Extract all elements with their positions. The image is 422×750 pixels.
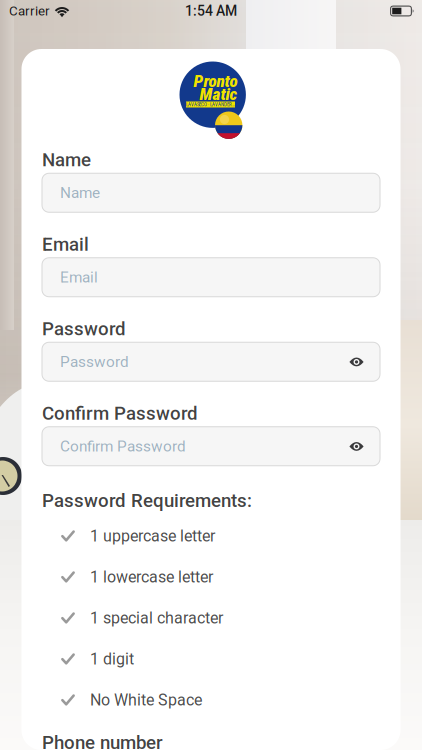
staticText: Confirm Password <box>42 402 198 424</box>
staticText: 1 lowercase letter <box>90 568 213 586</box>
staticText: Confirm Password <box>60 437 186 455</box>
staticText: Name <box>60 184 100 202</box>
staticText: Phone number <box>42 732 163 750</box>
staticText: Pronto <box>193 71 237 91</box>
staticText: Email <box>60 268 98 286</box>
staticText: Carrier <box>9 3 50 19</box>
staticText: Password <box>60 353 129 371</box>
staticText: LAVASECO · LAVANDERIA <box>186 102 235 107</box>
staticText: Name <box>42 149 91 171</box>
staticText: 1 special character <box>90 609 223 627</box>
staticText: 1:54 AM <box>185 3 237 19</box>
staticText: Email <box>42 233 89 255</box>
button[interactable]: Email <box>42 258 380 297</box>
button[interactable]: Confirm Password <box>42 427 380 466</box>
staticText: Matic <box>199 84 237 104</box>
staticText: 1 uppercase letter <box>90 527 215 545</box>
button[interactable]: Password <box>42 342 380 381</box>
staticText: Password Requirements: <box>42 490 252 511</box>
button[interactable]: Name <box>42 173 380 212</box>
staticText: Password <box>42 318 126 340</box>
staticText: No White Space <box>90 691 202 709</box>
staticText: 1 digit <box>90 650 134 668</box>
